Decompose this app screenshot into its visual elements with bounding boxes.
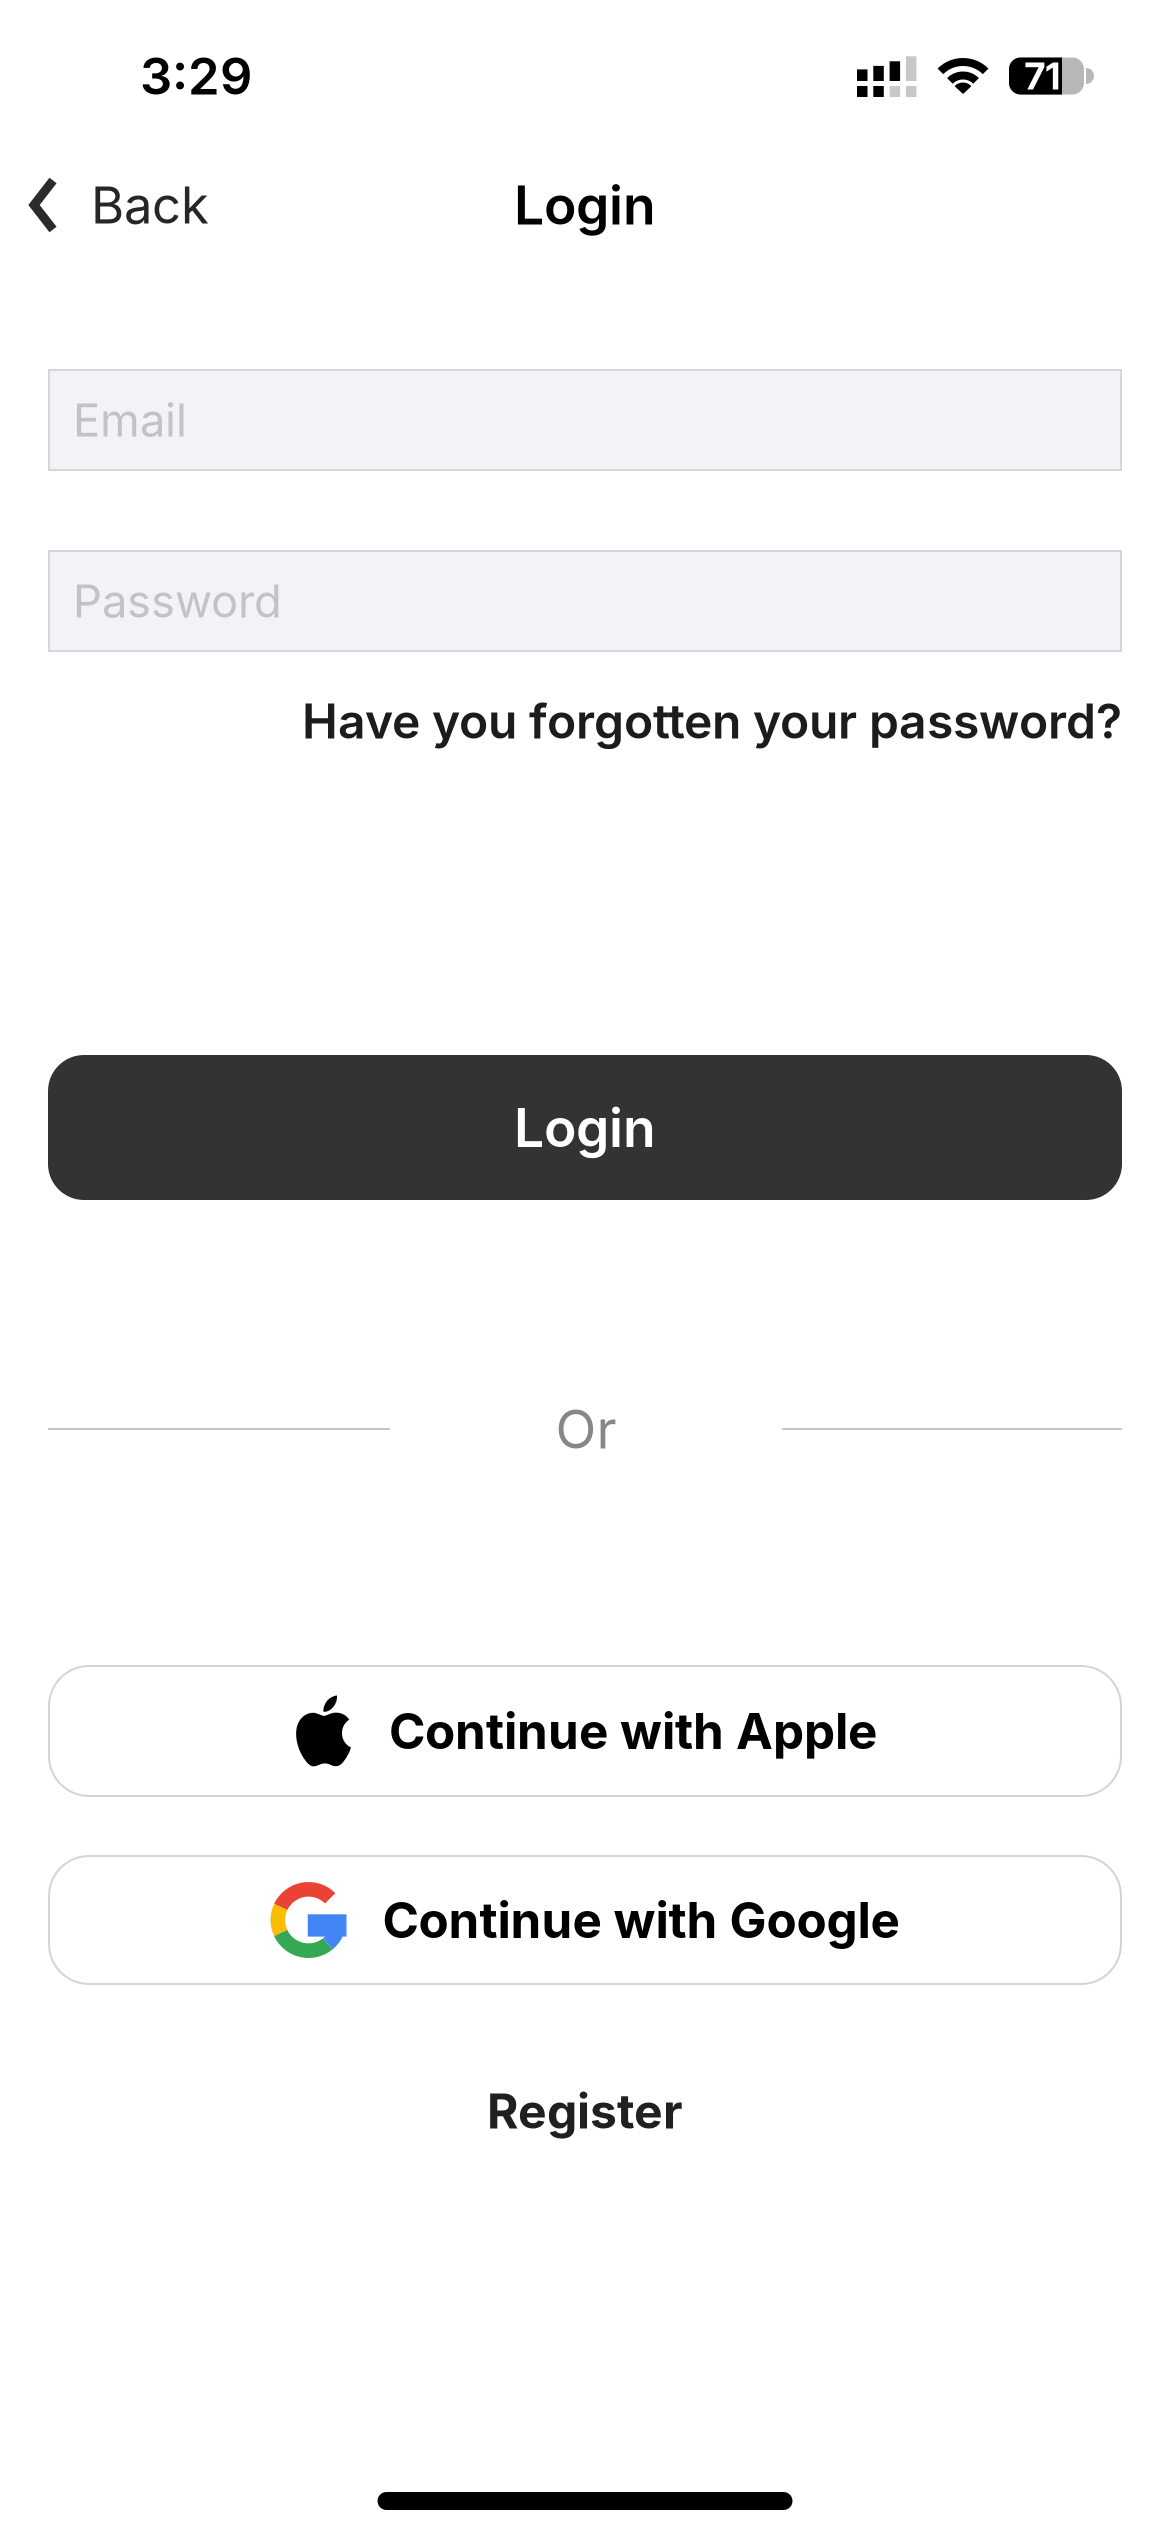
staticText: Password	[73, 574, 282, 628]
button[interactable]: Continue with Apple	[48, 1665, 1122, 1797]
staticText: Email	[73, 393, 187, 447]
button[interactable]: Back	[29, 175, 209, 235]
staticText: Back	[91, 175, 209, 235]
staticText: Continue with Apple	[389, 1702, 877, 1760]
button[interactable]: Have you forgotten your password?	[302, 693, 1122, 749]
staticText: Login	[514, 173, 656, 236]
button[interactable]: Continue with Google	[48, 1855, 1122, 1985]
staticText: Continue with Google	[382, 1891, 899, 1949]
button[interactable]: Register	[487, 2083, 683, 2139]
staticText: Register	[487, 2083, 683, 2139]
button[interactable]: Login	[48, 1055, 1122, 1200]
staticText: Have you forgotten your password?	[302, 693, 1122, 749]
staticText: 3:29	[140, 46, 252, 106]
staticText: 71	[1024, 54, 1060, 98]
staticText: Login	[514, 1096, 656, 1159]
staticText: Or	[555, 1397, 616, 1460]
